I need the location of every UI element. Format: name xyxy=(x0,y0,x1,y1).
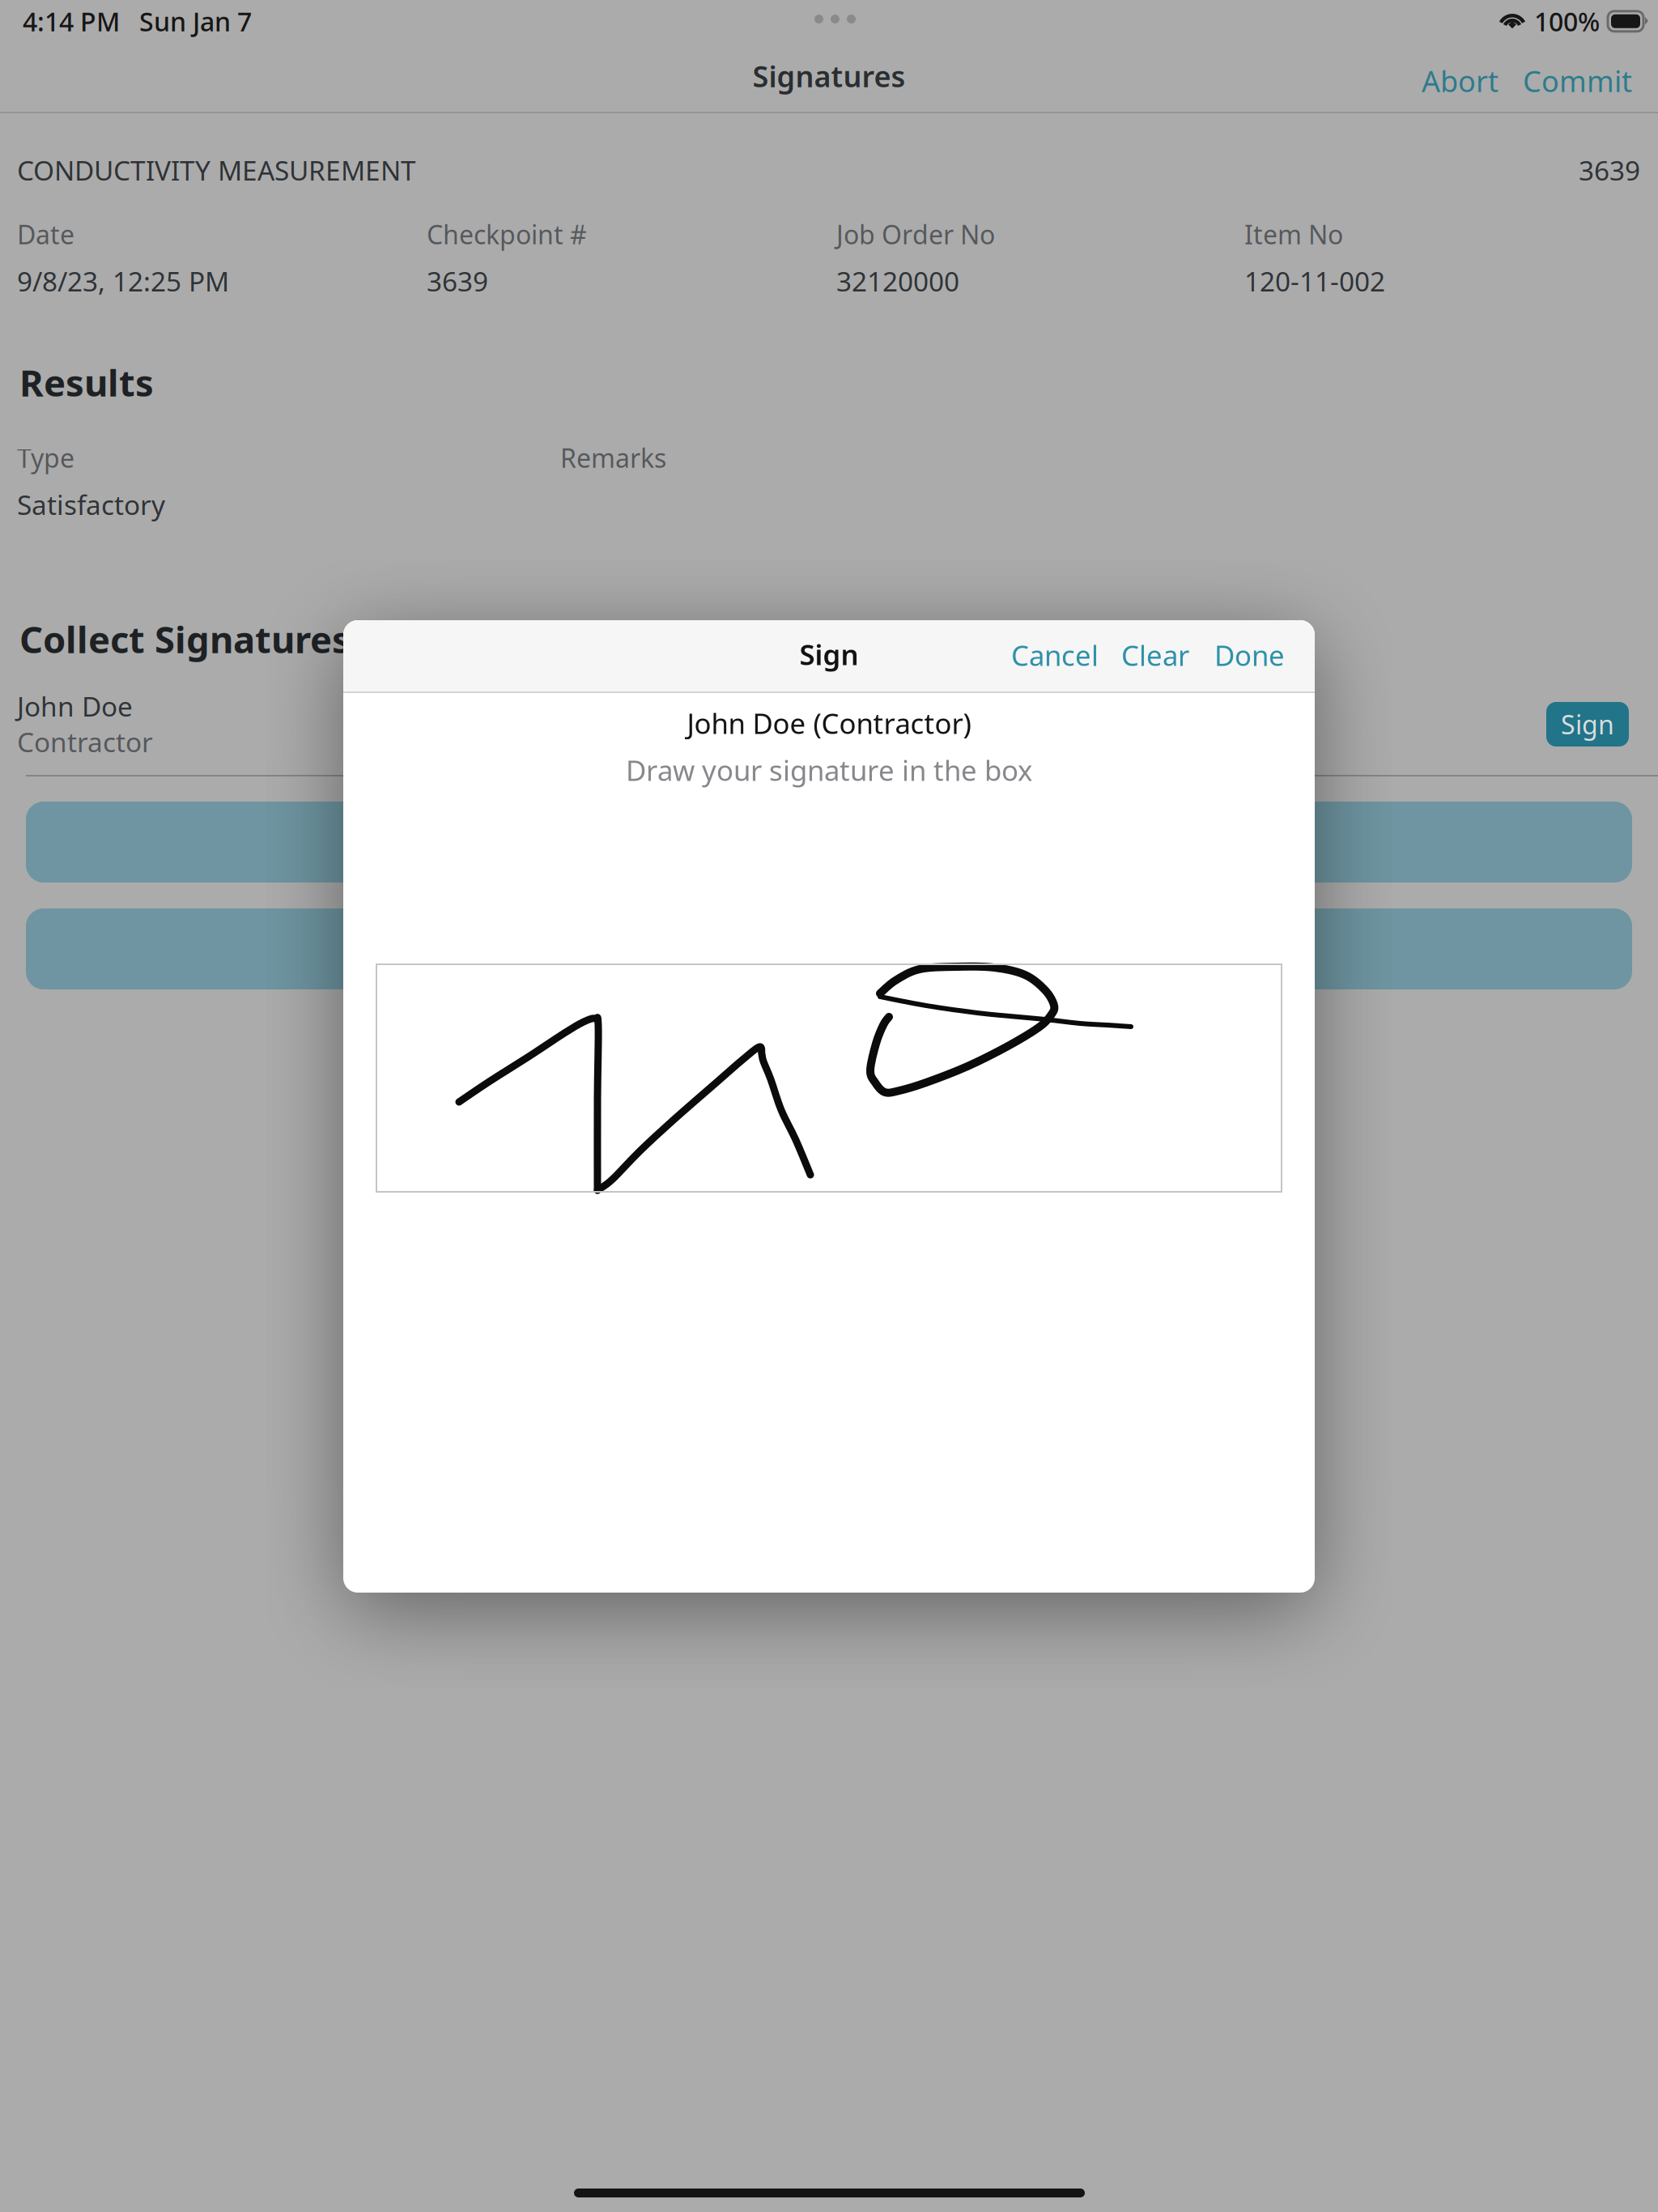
staticText: Collect Signatures xyxy=(19,615,351,663)
button[interactable]: Cancel xyxy=(1011,636,1099,674)
staticText: 3639 xyxy=(1579,152,1640,188)
button[interactable] xyxy=(26,802,1632,883)
staticText: 100% xyxy=(1534,4,1600,38)
button[interactable]: Sign xyxy=(1546,702,1629,747)
button[interactable]: Clear xyxy=(1121,636,1189,674)
staticText: Done xyxy=(1214,636,1285,674)
staticText: Clear xyxy=(1121,636,1189,674)
staticText: Contractor xyxy=(17,724,153,760)
staticText: Cancel xyxy=(1011,636,1099,674)
staticText: 3639 xyxy=(427,263,488,299)
staticText: Sign xyxy=(799,636,859,673)
staticText: Commit xyxy=(1523,62,1632,100)
staticText: John Doe (Contractor) xyxy=(687,704,971,742)
staticText: Checkpoint # xyxy=(427,217,587,251)
button[interactable] xyxy=(26,908,1632,989)
staticText: 9/8/23, 12:25 PM xyxy=(17,263,229,299)
staticText: Satisfactory xyxy=(17,487,165,522)
button[interactable]: Abort xyxy=(1422,53,1499,108)
staticText: Remarks xyxy=(560,440,666,475)
staticText: Abort xyxy=(1422,62,1499,100)
button[interactable]: Done xyxy=(1214,636,1285,674)
staticText: Sign xyxy=(1561,707,1614,741)
staticText: 4:14 PM xyxy=(23,4,120,38)
staticText: Results xyxy=(19,358,154,407)
staticText: Item No xyxy=(1244,217,1343,251)
staticText: Sun Jan 7 xyxy=(139,4,252,38)
staticText: 120-11-002 xyxy=(1244,263,1385,299)
staticText: Draw your signature in the box xyxy=(626,751,1032,789)
staticText: Date xyxy=(17,217,74,251)
button[interactable]: Commit xyxy=(1523,53,1632,108)
staticText: Job Order No xyxy=(836,217,995,251)
staticText: CONDUCTIVITY MEASUREMENT xyxy=(17,152,416,188)
staticText: Signatures xyxy=(752,57,906,95)
staticText: Type xyxy=(17,440,74,475)
staticText: 32120000 xyxy=(836,263,959,299)
staticText: John Doe xyxy=(17,688,133,724)
